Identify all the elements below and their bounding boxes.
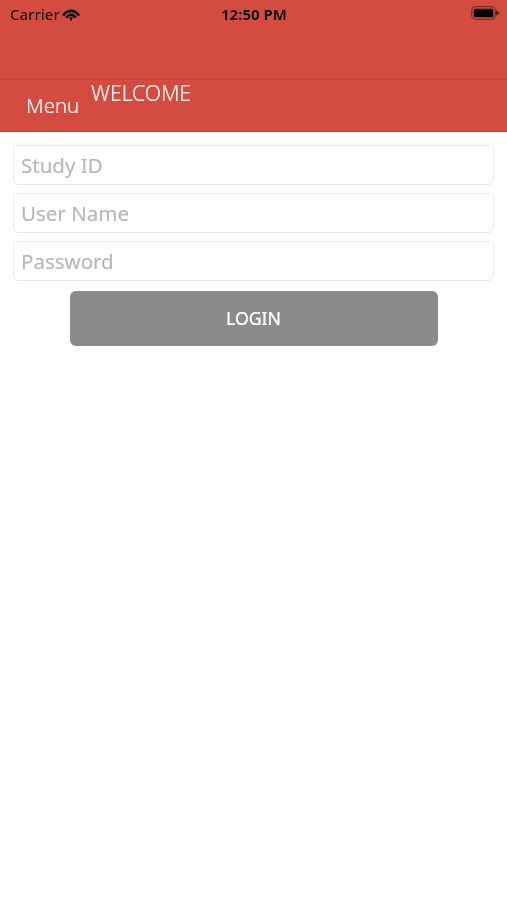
- staticText: Carrier: [10, 4, 60, 24]
- staticText: Menu: [26, 91, 80, 119]
- staticText: Password: [21, 247, 114, 275]
- staticText: LOGIN: [226, 306, 282, 330]
- button[interactable]: User Name: [13, 193, 494, 233]
- button[interactable]: Menu: [10, 84, 96, 126]
- staticText: WELCOME: [91, 78, 192, 107]
- staticText: User Name: [21, 199, 129, 227]
- other: Battery full: [471, 6, 500, 20]
- other: Wi-Fi: [61, 5, 81, 20]
- staticText: Study ID: [21, 151, 103, 179]
- button[interactable]: LOGIN: [70, 291, 438, 346]
- button[interactable]: Study ID: [13, 145, 494, 185]
- staticText: 12:50 PM: [221, 4, 287, 24]
- button[interactable]: Password: [13, 241, 494, 281]
